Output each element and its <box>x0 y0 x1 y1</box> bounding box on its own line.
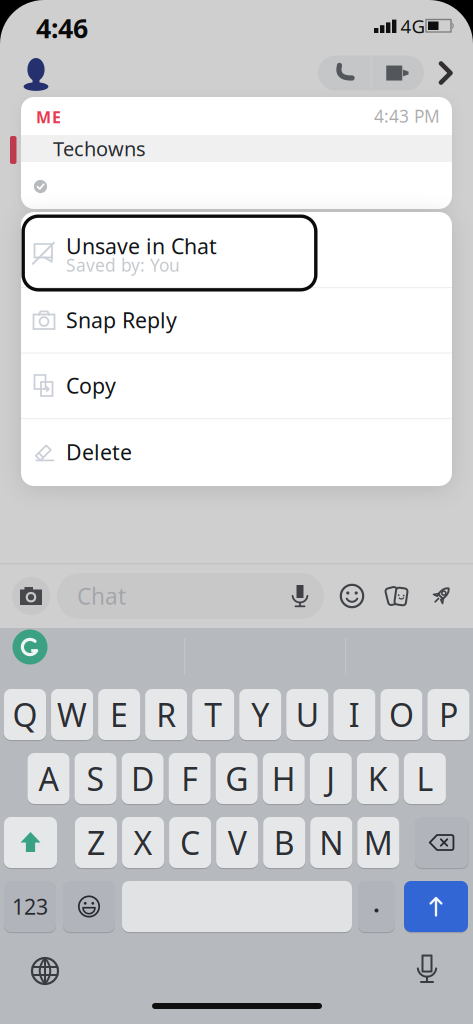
staticText: T <box>204 693 222 736</box>
button[interactable]: Snap Reply <box>21 287 452 352</box>
staticText: A <box>38 757 58 800</box>
staticText: L <box>416 757 433 800</box>
button[interactable]: Send <box>404 881 468 932</box>
button[interactable]: Grammarly <box>12 629 47 664</box>
staticText: S <box>86 757 104 800</box>
button[interactable]: K <box>357 753 399 804</box>
staticText: H <box>272 757 296 800</box>
button[interactable]: R <box>145 689 187 740</box>
staticText: V <box>228 821 247 864</box>
button[interactable]: Techowns <box>21 135 452 162</box>
staticText: F <box>181 757 198 800</box>
staticText: Snap Reply <box>66 306 177 334</box>
button[interactable]: Q <box>4 689 46 740</box>
staticText: Q <box>12 693 37 736</box>
staticText: J <box>326 757 335 800</box>
button[interactable]: T <box>192 689 234 740</box>
staticText: M <box>364 821 393 864</box>
button[interactable]: H <box>263 753 305 804</box>
button[interactable]: P <box>427 689 469 740</box>
button[interactable]: L <box>404 753 446 804</box>
staticText: K <box>368 757 388 800</box>
button[interactable]: Video call <box>371 55 424 90</box>
button[interactable]: Memories <box>381 583 413 609</box>
staticText: W <box>57 693 87 736</box>
button[interactable]: J <box>310 753 352 804</box>
staticText: ME <box>36 106 61 128</box>
button[interactable]: Games <box>426 581 456 611</box>
staticText: Unsave in Chat <box>66 232 217 260</box>
button[interactable]: X <box>122 817 164 868</box>
staticText: Z <box>87 821 105 864</box>
button[interactable]: W <box>51 689 93 740</box>
button[interactable]: A <box>27 753 69 804</box>
staticText: G <box>225 757 248 800</box>
button[interactable]: O <box>380 689 422 740</box>
button[interactable]: V <box>216 817 258 868</box>
button[interactable]: D <box>122 753 164 804</box>
staticText: O <box>389 693 414 736</box>
staticText: Saved by: You <box>66 253 180 276</box>
button[interactable]: Numbers <box>4 881 56 932</box>
button[interactable]: M <box>357 817 399 868</box>
button[interactable]: U <box>286 689 328 740</box>
staticText: E <box>110 693 128 736</box>
button[interactable]: E <box>98 689 140 740</box>
staticText: D <box>131 757 154 800</box>
button[interactable]: Chat text field <box>57 573 324 619</box>
staticText: P <box>439 693 458 736</box>
button[interactable]: Shift <box>4 817 57 868</box>
button[interactable]: Open chat details <box>435 59 457 87</box>
staticText: Chat <box>77 581 126 611</box>
staticText: Y <box>251 693 269 736</box>
button[interactable]: Dictation <box>416 954 438 986</box>
staticText: 4G <box>400 14 425 38</box>
staticText: X <box>134 821 153 864</box>
button[interactable]: I <box>333 689 375 740</box>
button[interactable]: Delete <box>21 419 452 484</box>
staticText: C <box>180 821 200 864</box>
staticText: I <box>349 693 360 736</box>
staticText: 4:43 PM <box>374 104 440 127</box>
button[interactable]: B <box>263 817 305 868</box>
button[interactable]: Copy <box>21 353 452 418</box>
staticText: N <box>319 821 343 864</box>
staticText: Techowns <box>53 135 146 162</box>
button[interactable]: Stickers <box>338 582 366 610</box>
staticText: U <box>296 693 319 736</box>
button[interactable]: Delete <box>415 817 468 868</box>
staticText: Copy <box>66 371 116 400</box>
staticText: Delete <box>66 438 132 466</box>
button[interactable]: C <box>169 817 211 868</box>
button[interactable]: Unsave in Chat <box>21 212 452 287</box>
staticText: 4:46 <box>36 10 88 46</box>
button[interactable]: Z <box>75 817 117 868</box>
button[interactable]: Emoji <box>63 881 115 932</box>
button[interactable]: N <box>310 817 352 868</box>
button[interactable]: Profile <box>23 56 49 92</box>
button[interactable]: F <box>169 753 211 804</box>
button[interactable]: Next keyboard <box>30 956 60 986</box>
button[interactable]: Y <box>239 689 281 740</box>
button[interactable]: Camera <box>12 577 50 615</box>
staticText: R <box>156 693 176 736</box>
button[interactable]: Period <box>358 881 395 932</box>
staticText: 123 <box>12 892 48 921</box>
staticText: B <box>274 821 295 864</box>
button[interactable]: S <box>74 753 116 804</box>
button[interactable]: G <box>216 753 258 804</box>
button[interactable]: Voice call <box>318 55 370 90</box>
